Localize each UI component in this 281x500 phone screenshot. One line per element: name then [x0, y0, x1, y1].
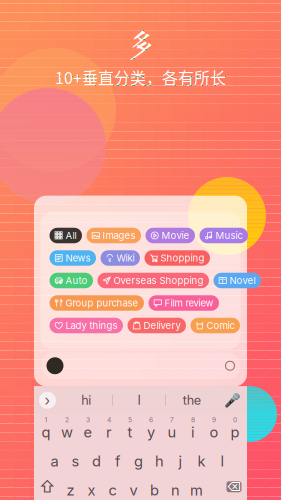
- staticText: Music: [215, 230, 242, 241]
- staticText: ›: [44, 391, 50, 409]
- button[interactable]: 9: [203, 414, 224, 443]
- button[interactable]: I: [113, 393, 165, 408]
- staticText: n: [171, 481, 180, 499]
- staticText: z: [66, 481, 74, 499]
- staticText: Shopping: [160, 252, 204, 264]
- button[interactable]: [102, 472, 123, 500]
- button[interactable]: [60, 472, 81, 500]
- button[interactable]: Movie: [145, 228, 195, 243]
- button[interactable]: Comic: [190, 318, 240, 333]
- staticText: I: [137, 393, 140, 408]
- staticText: o: [209, 423, 218, 441]
- button[interactable]: [128, 443, 149, 472]
- staticText: Novel: [229, 275, 255, 286]
- staticText: b: [150, 481, 159, 499]
- button[interactable]: [44, 443, 65, 472]
- staticText: f: [115, 452, 120, 470]
- button[interactable]: hi: [60, 393, 112, 408]
- button[interactable]: Shift: [34, 472, 60, 500]
- button[interactable]: [212, 443, 233, 472]
- button[interactable]: Auto: [49, 273, 93, 288]
- staticText: Film review: [164, 297, 213, 309]
- button[interactable]: [149, 443, 170, 472]
- button[interactable]: Overseas Shopping: [97, 273, 209, 288]
- button[interactable]: 0: [224, 414, 245, 443]
- staticText: 6: [149, 416, 153, 424]
- button[interactable]: Delivery: [127, 318, 186, 333]
- button[interactable]: All: [49, 228, 82, 243]
- staticText: Images: [102, 230, 135, 241]
- button[interactable]: Wiki: [100, 250, 140, 266]
- button[interactable]: More suggestions: [39, 392, 56, 409]
- button[interactable]: [81, 472, 102, 500]
- button[interactable]: 1: [35, 414, 56, 443]
- staticText: d: [92, 452, 101, 470]
- staticText: ⇧: [39, 477, 55, 496]
- button[interactable]: Film review: [148, 295, 219, 311]
- button[interactable]: 3: [77, 414, 98, 443]
- button[interactable]: News: [49, 250, 96, 266]
- button[interactable]: 2: [56, 414, 77, 443]
- staticText: c: [108, 481, 116, 499]
- button[interactable]: [170, 443, 191, 472]
- button[interactable]: Images: [86, 228, 141, 243]
- staticText: j: [178, 452, 182, 470]
- staticText: 10+垂直分类，各有所长: [55, 65, 226, 88]
- staticText: m: [190, 481, 203, 499]
- staticText: 5: [128, 416, 132, 424]
- button[interactable]: [186, 472, 207, 500]
- button[interactable]: [107, 443, 128, 472]
- staticText: q: [41, 423, 50, 441]
- staticText: e: [83, 423, 92, 441]
- staticText: u: [167, 423, 176, 441]
- staticText: hi: [81, 393, 91, 408]
- button[interactable]: 6: [140, 414, 161, 443]
- button[interactable]: 8: [182, 414, 203, 443]
- staticText: Wiki: [116, 252, 134, 264]
- button[interactable]: [123, 472, 144, 500]
- staticText: 2: [65, 416, 69, 424]
- staticText: t: [127, 423, 132, 441]
- staticText: Auto: [65, 275, 87, 286]
- button[interactable]: 7: [161, 414, 182, 443]
- button[interactable]: [144, 472, 165, 500]
- staticText: h: [155, 452, 164, 470]
- staticText: 0: [233, 416, 237, 424]
- staticText: 7: [170, 416, 174, 424]
- button[interactable]: [65, 443, 86, 472]
- button[interactable]: Group purchase: [49, 295, 144, 311]
- button[interactable]: [191, 443, 212, 472]
- button[interactable]: [165, 472, 186, 500]
- button[interactable]: Novel: [213, 273, 261, 288]
- button[interactable]: 4: [98, 414, 119, 443]
- staticText: k: [197, 452, 205, 470]
- button[interactable]: 5: [119, 414, 140, 443]
- staticText: 多: [124, 26, 157, 59]
- staticText: 9: [212, 416, 216, 424]
- staticText: 4: [107, 416, 111, 424]
- button[interactable]: Lady things: [49, 318, 123, 333]
- button[interactable]: Voice input: [222, 390, 242, 410]
- staticText: Movie: [161, 230, 189, 241]
- button[interactable]: Shopping: [144, 250, 210, 266]
- button[interactable]: the: [166, 393, 218, 408]
- button[interactable]: Delete: [221, 472, 247, 500]
- staticText: r: [106, 423, 112, 441]
- staticText: g: [134, 452, 143, 470]
- staticText: Lady things: [65, 320, 117, 331]
- staticText: p: [230, 423, 239, 441]
- staticText: Delivery: [143, 320, 180, 331]
- button[interactable]: Music: [199, 228, 248, 243]
- staticText: 🎤: [223, 392, 240, 408]
- button[interactable]: [86, 443, 107, 472]
